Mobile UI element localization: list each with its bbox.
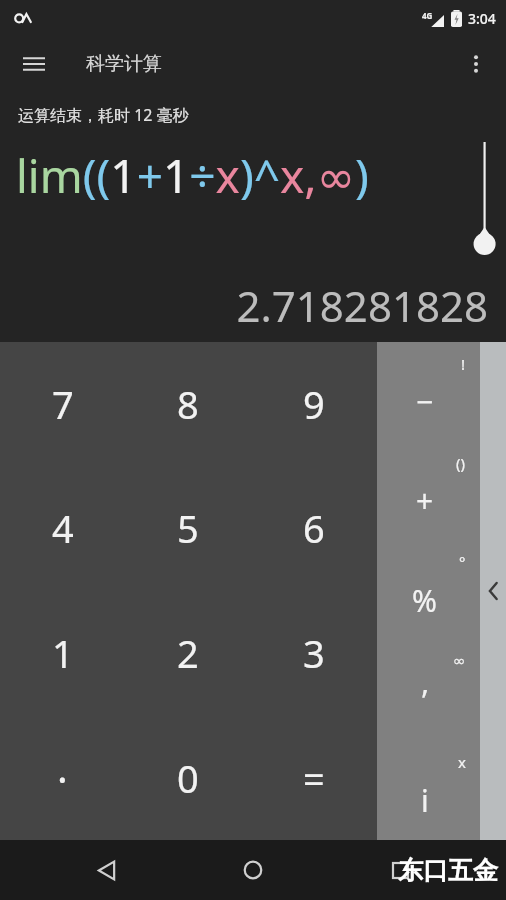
staticText: + [416, 480, 434, 521]
button[interactable]: () [377, 441, 480, 540]
staticText: 4 [52, 502, 74, 554]
staticText: x [458, 752, 466, 772]
button[interactable]: Back [82, 846, 130, 894]
button[interactable]: 3 [251, 590, 377, 715]
button[interactable]: ° [377, 540, 480, 640]
staticText: i [421, 780, 429, 821]
button[interactable]: 2 [125, 590, 251, 715]
staticText: 8 [177, 378, 199, 430]
staticText: 9 [303, 378, 325, 430]
staticText: ° [459, 552, 466, 572]
staticText: lim((1+1÷x)^x,∞) [16, 144, 369, 207]
button[interactable]: ∞ [377, 640, 480, 740]
staticText: 6 [303, 502, 325, 554]
staticText: = [303, 752, 325, 804]
button[interactable]: Home [229, 846, 277, 894]
button[interactable]: Recent apps [376, 846, 424, 894]
staticText: % [412, 580, 437, 621]
button[interactable]: = [251, 715, 377, 840]
button[interactable]: 7 [0, 342, 125, 466]
button[interactable]: 8 [125, 342, 251, 466]
staticText: · [57, 751, 68, 805]
staticText: ! [461, 354, 466, 374]
staticText: 东口五金 [398, 855, 498, 886]
staticText: − [416, 381, 434, 422]
staticText: ’ [422, 680, 428, 721]
staticText: 3:04 [468, 9, 496, 28]
staticText: 运算结束，耗时 12 毫秒 [18, 104, 189, 126]
button[interactable]: Expand panel [480, 342, 506, 840]
staticText: 5 [177, 502, 199, 554]
button[interactable]: 1 [0, 590, 125, 715]
button[interactable]: 9 [251, 342, 377, 466]
button[interactable]: x [377, 740, 480, 840]
staticText: 科学计算 [86, 52, 162, 76]
button[interactable]: 0 [125, 715, 251, 840]
staticText: 2 [177, 627, 199, 679]
button[interactable]: 5 [125, 466, 251, 590]
staticText: 3 [303, 627, 325, 679]
staticText: ∞ [453, 652, 466, 669]
button[interactable]: Open navigation menu [10, 40, 58, 88]
staticText: 4G [422, 10, 433, 21]
staticText: 7 [52, 378, 74, 430]
staticText: 2.718281828 [236, 277, 488, 334]
button[interactable]: 6 [251, 466, 377, 590]
button[interactable]: ! [377, 342, 480, 441]
staticText: () [456, 453, 466, 473]
staticText: 0 [177, 752, 199, 804]
button[interactable]: · [0, 715, 125, 840]
staticText: 1 [52, 627, 74, 679]
button[interactable]: 4 [0, 466, 125, 590]
button[interactable]: More options [452, 40, 500, 88]
